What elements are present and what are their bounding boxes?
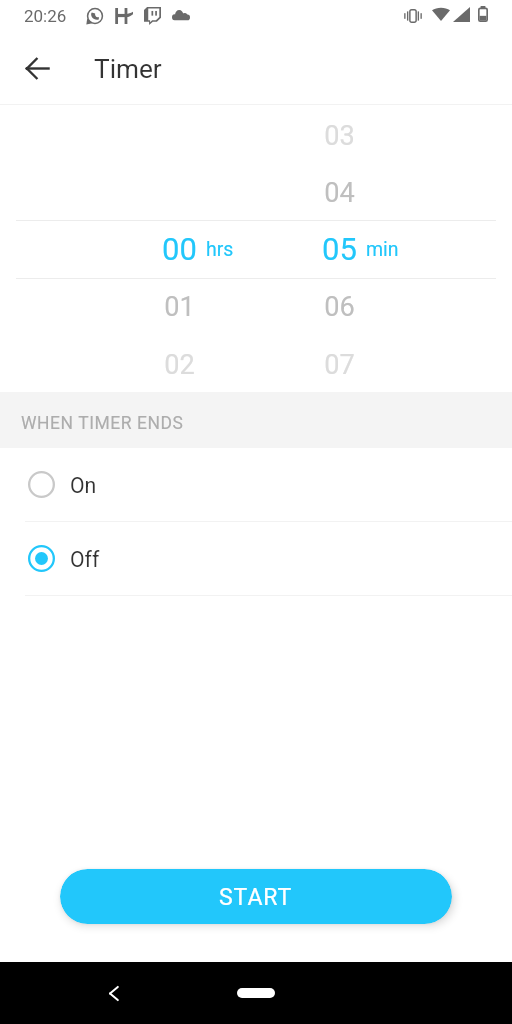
staticText: 06 xyxy=(324,291,355,323)
staticText: 20:26 xyxy=(24,6,67,26)
staticText: 02 xyxy=(164,349,195,381)
button[interactable]: START xyxy=(60,869,452,924)
button[interactable]: Back xyxy=(98,977,130,1009)
staticText: On xyxy=(70,473,97,498)
staticText: 03 xyxy=(324,120,355,152)
staticText: Timer xyxy=(94,54,162,85)
button[interactable]: Off xyxy=(0,522,512,595)
staticText: 07 xyxy=(324,349,355,381)
staticText: hrs xyxy=(206,238,234,261)
button[interactable]: Navigate up xyxy=(14,45,60,91)
staticText: WHEN TIMER ENDS xyxy=(21,413,184,434)
staticText: 01 xyxy=(164,291,195,323)
staticText: Off xyxy=(70,547,100,572)
button[interactable]: On xyxy=(0,448,512,521)
staticText: 00 xyxy=(162,231,197,267)
staticText: 05 xyxy=(322,231,357,267)
staticText: 04 xyxy=(324,177,355,209)
staticText: START xyxy=(219,884,293,911)
staticText: min xyxy=(366,238,399,261)
button[interactable]: Home xyxy=(237,988,275,998)
